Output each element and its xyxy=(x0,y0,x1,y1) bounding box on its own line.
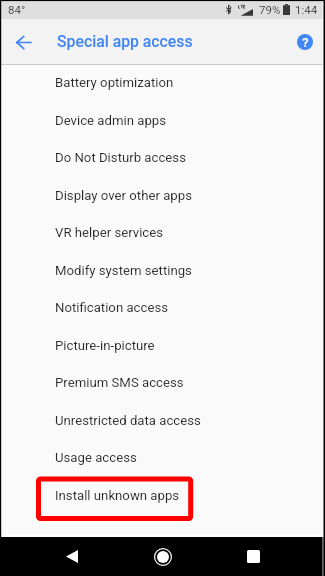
staticText: Picture-in-picture xyxy=(55,338,155,353)
staticText: 79% xyxy=(259,3,281,16)
button[interactable]: Notification access xyxy=(0,289,325,326)
button[interactable]: Battery optimization xyxy=(0,64,325,101)
staticText: Device admin apps xyxy=(55,113,167,128)
staticText: Premium SMS access xyxy=(55,375,184,390)
button[interactable]: VR helper services xyxy=(0,214,325,251)
button[interactable]: Help xyxy=(292,29,318,55)
staticText: VR helper services xyxy=(55,225,164,240)
staticText: ? xyxy=(302,35,309,50)
button[interactable]: Home xyxy=(143,537,183,576)
button[interactable]: Navigate up xyxy=(9,28,37,56)
button[interactable]: Back xyxy=(52,537,92,576)
button[interactable]: Modify system settings xyxy=(0,252,325,289)
staticText: Notification access xyxy=(55,300,169,315)
button[interactable]: Display over other apps xyxy=(0,177,325,214)
button[interactable]: Unrestricted data access xyxy=(0,402,325,439)
button[interactable]: Picture-in-picture xyxy=(0,327,325,364)
staticText: Do Not Disturb access xyxy=(55,150,186,165)
button[interactable]: Do Not Disturb access xyxy=(0,139,325,176)
staticText: 1:44 xyxy=(295,3,318,16)
staticText: Battery optimization xyxy=(55,75,174,90)
staticText: Special app access xyxy=(57,32,193,51)
button[interactable]: Install unknown apps xyxy=(0,477,325,514)
button[interactable]: Usage access xyxy=(0,439,325,476)
staticText: Display over other apps xyxy=(55,188,192,203)
button[interactable]: Premium SMS access xyxy=(0,364,325,401)
staticText: Install unknown apps xyxy=(55,488,180,503)
staticText: Modify system settings xyxy=(55,263,192,278)
button[interactable]: Device admin apps xyxy=(0,102,325,139)
staticText: Unrestricted data access xyxy=(55,413,201,428)
button[interactable]: Recent apps xyxy=(233,537,273,576)
staticText: Usage access xyxy=(55,450,137,465)
staticText: 84° xyxy=(8,3,26,16)
